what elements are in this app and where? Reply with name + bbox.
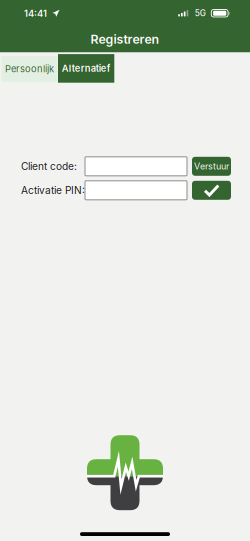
- staticText: 14:41: [24, 8, 47, 19]
- staticText: 5G: [195, 8, 206, 18]
- button[interactable]: Persoonlijk: [1, 56, 57, 82]
- staticText: Client code:: [21, 160, 77, 172]
- button[interactable]: Bevestigen: [192, 181, 231, 200]
- staticText: Activatie PIN:: [21, 184, 85, 196]
- staticText: Alternatief: [62, 63, 111, 74]
- button[interactable]: Verstuur: [192, 157, 231, 176]
- staticText: Persoonlijk: [5, 63, 54, 74]
- staticText: Verstuur: [194, 161, 229, 172]
- staticText: Registreren: [90, 32, 159, 47]
- button[interactable]: Alternatief: [58, 54, 114, 83]
